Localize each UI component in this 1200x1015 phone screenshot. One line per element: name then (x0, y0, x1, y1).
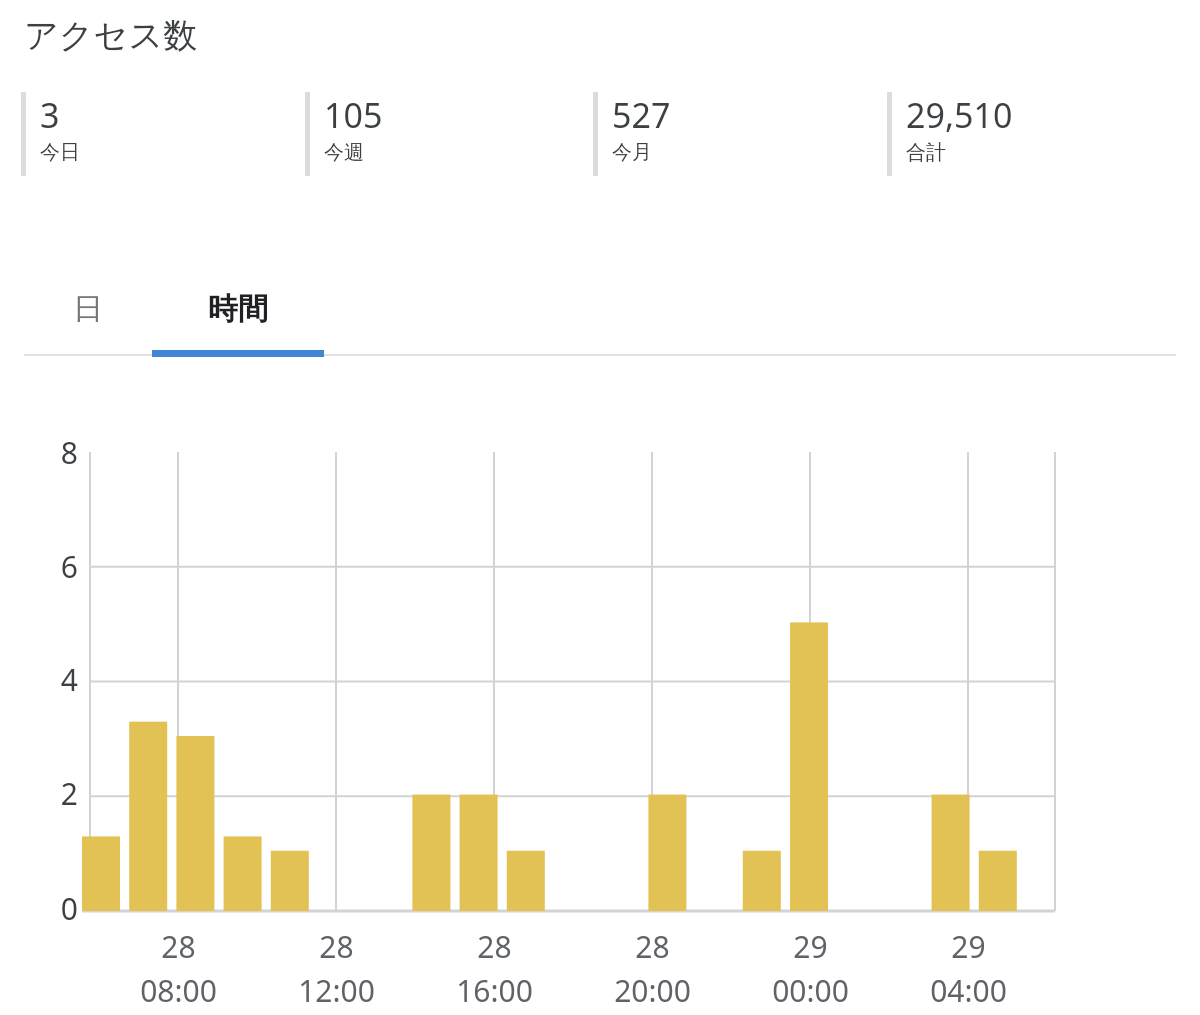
staticText: 28 (477, 926, 512, 967)
button[interactable]: 105 (305, 92, 575, 176)
staticText: 28 (319, 926, 354, 967)
staticText: 105 (324, 92, 383, 138)
staticText: 4 (60, 659, 78, 700)
button[interactable]: 527 (593, 92, 863, 176)
button[interactable]: 29,510 (887, 92, 1157, 176)
button[interactable]: 日 (24, 262, 152, 356)
staticText: 今週 (324, 140, 364, 165)
staticText: 0 (60, 888, 78, 929)
staticText: アクセス数 (24, 14, 198, 57)
staticText: 00:00 (772, 970, 849, 1011)
staticText: 29 (793, 926, 828, 967)
staticText: 29,510 (906, 92, 1013, 138)
staticText: 16:00 (456, 970, 533, 1011)
staticText: 6 (60, 546, 78, 587)
button[interactable]: 3 (21, 92, 291, 176)
staticText: 29 (951, 926, 986, 967)
staticText: 時間 (208, 290, 268, 328)
staticText: 8 (60, 432, 78, 473)
button[interactable]: 時間 (152, 262, 324, 356)
staticText: 2 (60, 773, 78, 814)
button[interactable]: アクセス数 時間別グラフ (90, 452, 1055, 911)
staticText: 今月 (612, 140, 652, 165)
staticText: 527 (612, 92, 671, 138)
staticText: 04:00 (930, 970, 1007, 1011)
staticText: 今日 (40, 140, 80, 165)
staticText: 28 (635, 926, 670, 967)
staticText: 日 (73, 290, 103, 328)
staticText: 合計 (906, 140, 946, 165)
staticText: 28 (161, 926, 196, 967)
staticText: 12:00 (298, 970, 375, 1011)
staticText: 08:00 (140, 970, 217, 1011)
staticText: 3 (40, 92, 60, 138)
staticText: 20:00 (614, 970, 691, 1011)
